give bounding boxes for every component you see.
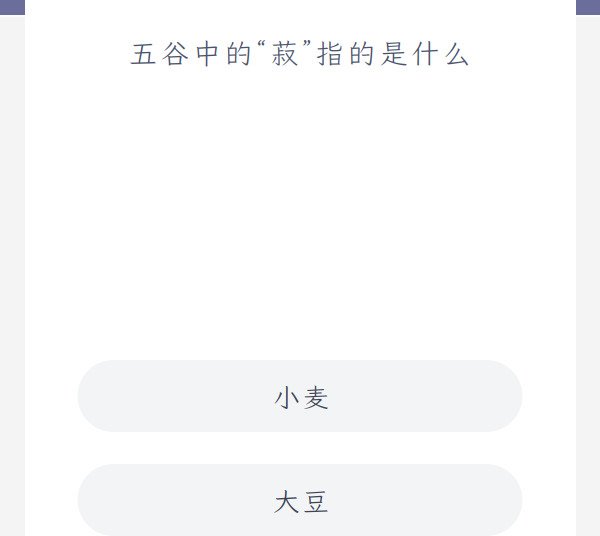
staticText: 小麦 [273, 379, 330, 414]
staticText: 大豆 [273, 483, 330, 518]
button[interactable]: 大豆 [77, 464, 522, 536]
button[interactable]: 小麦 [77, 360, 522, 432]
staticText: 五谷中的“菽”指的是什么 [129, 35, 471, 71]
